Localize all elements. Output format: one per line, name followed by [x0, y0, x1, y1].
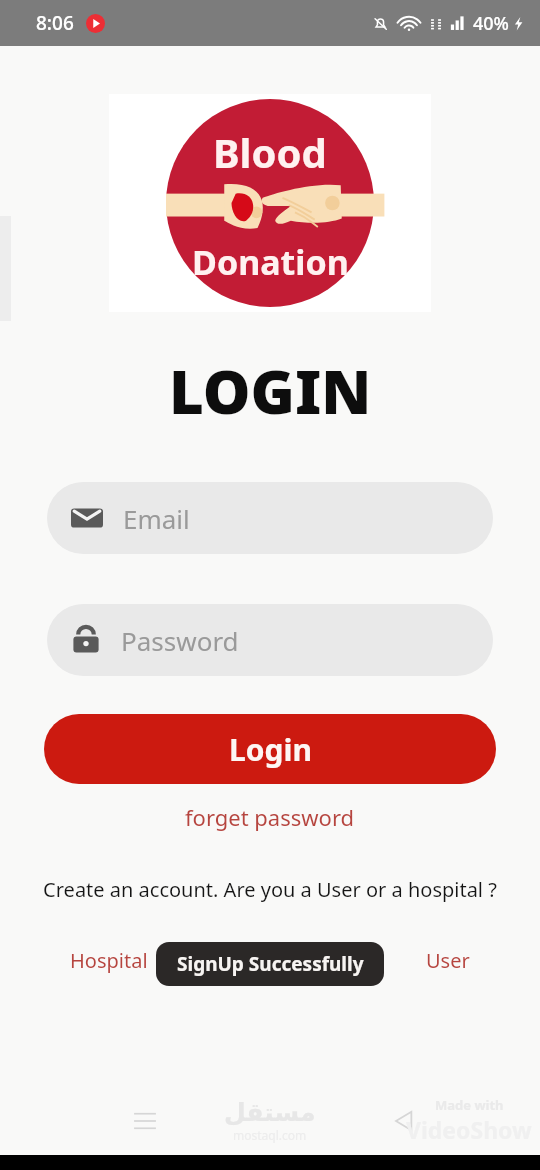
button[interactable]: Hospital	[66, 943, 152, 978]
staticText: User	[426, 947, 470, 974]
staticText: mostaql.com	[233, 1127, 307, 1143]
staticText: Login	[229, 729, 312, 770]
button[interactable]: Back	[378, 1096, 428, 1146]
staticText: 8:06	[36, 10, 74, 36]
staticText: Create an account. Are you a User or a h…	[43, 876, 497, 903]
other: Email	[71, 502, 103, 534]
button[interactable]: Email	[47, 482, 493, 554]
button[interactable]: Login	[44, 714, 496, 784]
button[interactable]: Password	[47, 604, 493, 676]
staticText: مستقل	[224, 1098, 316, 1127]
staticText: Blood	[213, 125, 327, 179]
staticText: 40%	[473, 11, 509, 36]
staticText: Donation	[192, 239, 349, 285]
staticText: Made with	[435, 1096, 504, 1114]
staticText: LOGIN	[169, 350, 372, 432]
button[interactable]: forget password	[179, 800, 361, 834]
staticText: SignUp Successfully	[177, 951, 364, 977]
staticText: VideoShow	[406, 1114, 532, 1145]
button[interactable]: User	[422, 943, 474, 978]
staticText: Password	[121, 623, 239, 658]
other: Password	[71, 625, 101, 655]
staticText: Hospital	[70, 947, 148, 974]
staticText: forget password	[185, 802, 355, 832]
staticText: Email	[123, 501, 190, 536]
button[interactable]: Recent apps	[118, 1094, 172, 1148]
